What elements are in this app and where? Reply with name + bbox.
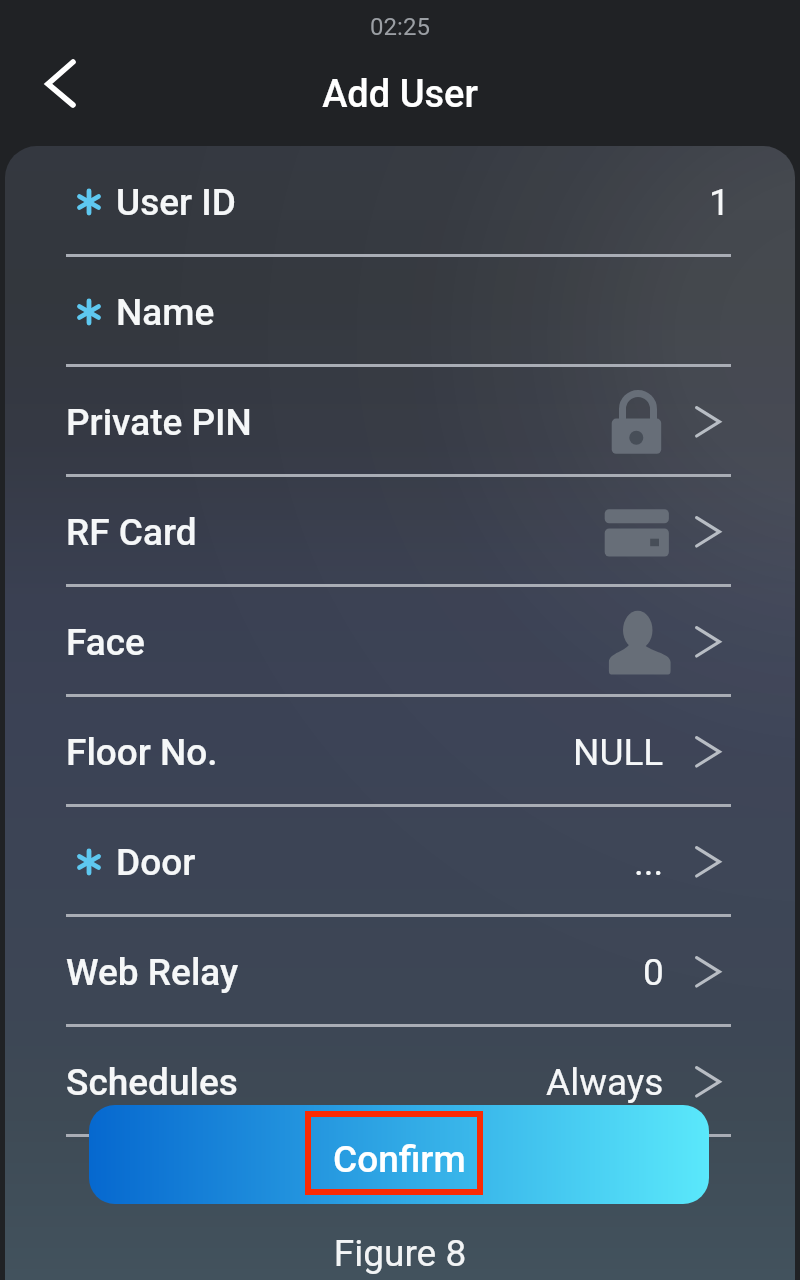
staticText: Figure 8 <box>0 1232 800 1275</box>
staticText: Door <box>116 841 196 884</box>
button[interactable]: User ID <box>0 148 800 258</box>
staticText: Floor No. <box>66 731 218 774</box>
button[interactable]: Private PIN <box>0 368 800 478</box>
staticText: Face <box>66 621 145 664</box>
staticText: 1 <box>709 181 730 224</box>
button[interactable]: Door <box>0 808 800 918</box>
staticText: 02:25 <box>0 13 800 41</box>
button[interactable]: Floor No. <box>0 698 800 808</box>
staticText: Confirm <box>333 1138 466 1181</box>
button[interactable]: Confirm <box>89 1105 709 1204</box>
staticText: RF Card <box>66 511 197 554</box>
staticText: Web Relay <box>66 951 239 994</box>
button[interactable]: Web Relay <box>0 918 800 1028</box>
staticText: 0 <box>643 951 664 994</box>
staticText: NULL <box>573 731 664 774</box>
staticText: Add User <box>0 72 800 117</box>
staticText: Private PIN <box>66 401 252 444</box>
button[interactable]: Name <box>0 258 800 368</box>
button[interactable]: Face <box>0 588 800 698</box>
staticText: ... <box>634 841 664 884</box>
staticText: Name <box>116 291 215 334</box>
button[interactable]: RF Card <box>0 478 800 588</box>
staticText: Schedules <box>66 1061 238 1104</box>
staticText: User ID <box>116 181 236 224</box>
staticText: Always <box>546 1061 664 1104</box>
button[interactable]: Back <box>28 56 84 112</box>
button[interactable]: Schedules <box>0 1028 800 1138</box>
